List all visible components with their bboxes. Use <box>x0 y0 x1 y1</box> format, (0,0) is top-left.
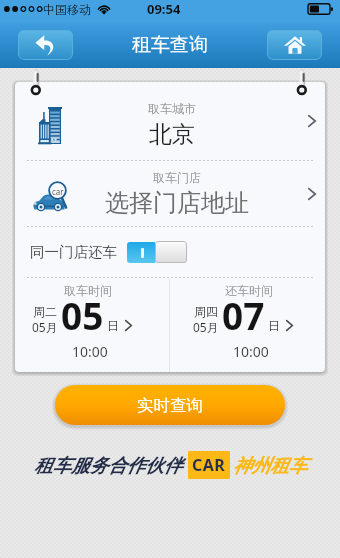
staticText: 选择门店地址 <box>105 188 249 218</box>
button[interactable]: 取车城市 <box>15 82 325 160</box>
button[interactable]: Back <box>18 30 73 60</box>
staticText: 取车城市 <box>148 101 196 116</box>
staticText: 07 <box>222 290 265 340</box>
staticText: 日 <box>107 318 119 333</box>
staticText: 神州租车 <box>233 454 307 477</box>
staticText: 10:00 <box>233 342 269 361</box>
staticText: 日 <box>268 318 280 333</box>
staticText: 租车服务合作伙伴 <box>34 454 182 477</box>
button[interactable]: 实时查询 <box>55 385 285 425</box>
staticText: 取车时间 <box>64 283 112 298</box>
button[interactable]: Home <box>267 30 322 60</box>
staticText: 周二 <box>33 304 57 319</box>
staticText: 09:54 <box>147 0 181 18</box>
staticText: 取车门店 <box>153 170 201 185</box>
staticText: 05月 <box>32 319 58 335</box>
staticText: 还车时间 <box>225 283 273 298</box>
staticText: 租车查询 <box>132 33 208 57</box>
button[interactable]: car <box>15 161 325 226</box>
staticText: 中国移动 <box>43 2 91 17</box>
staticText: 05 <box>61 290 104 340</box>
staticText: CAR <box>192 454 226 476</box>
staticText: 北京 <box>149 120 195 149</box>
button[interactable] <box>127 241 187 263</box>
staticText: 实时查询 <box>137 395 203 416</box>
staticText: 周四 <box>194 304 218 319</box>
staticText: 05月 <box>193 319 219 335</box>
staticText: 10:00 <box>72 342 108 361</box>
button[interactable]: 取车时间 <box>15 278 169 372</box>
staticText: car <box>52 186 64 197</box>
staticText: 同一门店还车 <box>30 243 117 261</box>
button[interactable]: 还车时间 <box>170 278 325 372</box>
